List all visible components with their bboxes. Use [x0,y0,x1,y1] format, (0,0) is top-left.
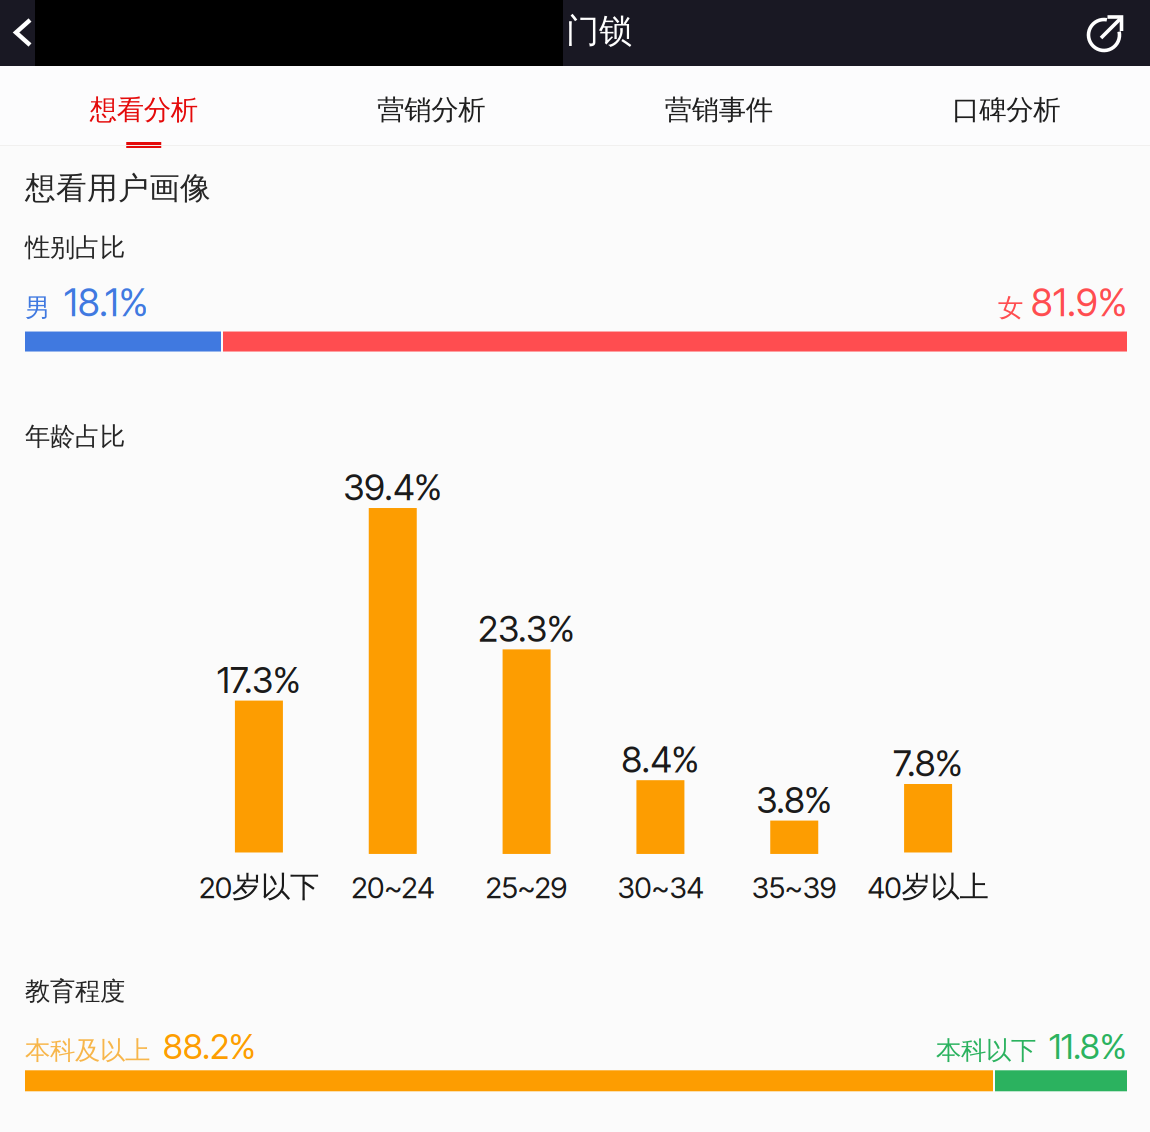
staticText: 教育程度 [25,975,125,1007]
staticText: 营销分析 [377,93,485,127]
staticText: 口碑分析 [952,93,1060,127]
staticText: 想看分析 [90,93,198,127]
staticText: 门锁 [566,10,632,52]
staticText: 本科及以上 [25,1034,150,1066]
staticText: 25~29 [486,870,568,905]
staticText: 88.2% [163,1025,256,1067]
staticText: 想看用户画像 [25,169,211,208]
staticText: 3.8% [756,778,832,822]
staticText: 营销事件 [665,93,773,127]
staticText: 23.3% [478,607,575,650]
staticText: 本科以下 [936,1034,1036,1066]
button[interactable]: Share [1082,0,1150,66]
button[interactable]: Back [0,0,46,66]
button[interactable]: 口碑分析 [862,66,1150,145]
staticText: 30~34 [617,870,703,905]
staticText: 男 [25,292,50,324]
staticText: 35~39 [752,870,837,905]
staticText: 18.1% [64,279,148,325]
staticText: 39.4% [343,465,442,509]
staticText: 女 [998,292,1023,324]
button[interactable]: 营销分析 [287,66,575,145]
button[interactable]: 营销事件 [575,66,862,145]
staticText: 性别占比 [25,232,125,263]
staticText: 8.4% [621,738,699,781]
staticText: 年龄占比 [25,420,125,452]
staticText: 20岁以下 [199,868,319,905]
button[interactable]: 想看分析 [0,66,287,145]
staticText: 40岁以上 [868,868,989,905]
staticText: 17.3% [217,658,301,702]
staticText: 20~24 [351,870,434,905]
staticText: 7.8% [893,741,963,785]
staticText: 81.9% [1031,279,1127,325]
staticText: 11.8% [1049,1025,1127,1067]
